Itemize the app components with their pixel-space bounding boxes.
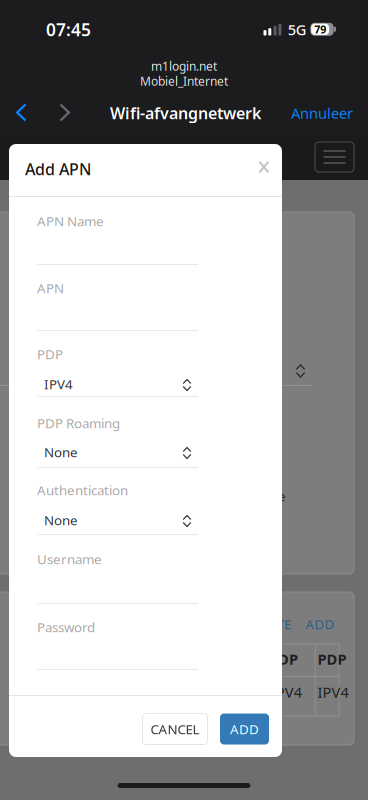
staticText: None [44,511,78,529]
staticText: Authentication [37,481,128,499]
staticText: m1login.net [151,58,217,74]
staticText: DELETE [246,615,291,633]
button[interactable]: Forward [45,92,85,132]
staticText: ADD [305,615,334,633]
button[interactable]: Menu [315,142,354,172]
button[interactable]: Close [250,153,278,181]
staticText: Mobiel_Internet [140,73,228,89]
staticText: PDP [317,649,346,669]
staticText: Password [37,618,95,636]
staticText: APN Name [37,212,104,230]
staticText: Username [37,550,102,568]
staticText: Enable [245,487,286,505]
staticText: 07:45 [46,18,91,41]
staticText: ADD [230,720,259,738]
button[interactable]: None [37,508,198,532]
button[interactable]: CANCEL [142,713,208,744]
button[interactable]: IPV4 [37,372,198,396]
staticText: Wifi-afvangnetwerk [110,102,261,124]
staticText: None [44,443,78,461]
button[interactable]: ADD [220,713,269,744]
button[interactable]: Annuleer [273,96,353,130]
staticText: IPV4 [317,682,348,702]
staticText: 79 [314,22,326,36]
staticText: 5G [288,20,307,39]
button[interactable]: Back [1,92,41,132]
staticText: IPV4 [271,682,302,702]
staticText: Add APN [25,158,91,180]
staticText: APN [37,279,64,297]
staticText: IPV4 [44,375,73,393]
staticText: CANCEL [150,720,199,738]
staticText: Annuleer [291,103,353,123]
button[interactable]: None [37,440,198,464]
staticText: PDP [37,345,63,363]
staticText: PDP [269,649,298,669]
staticText: PDP Roaming [37,414,120,432]
